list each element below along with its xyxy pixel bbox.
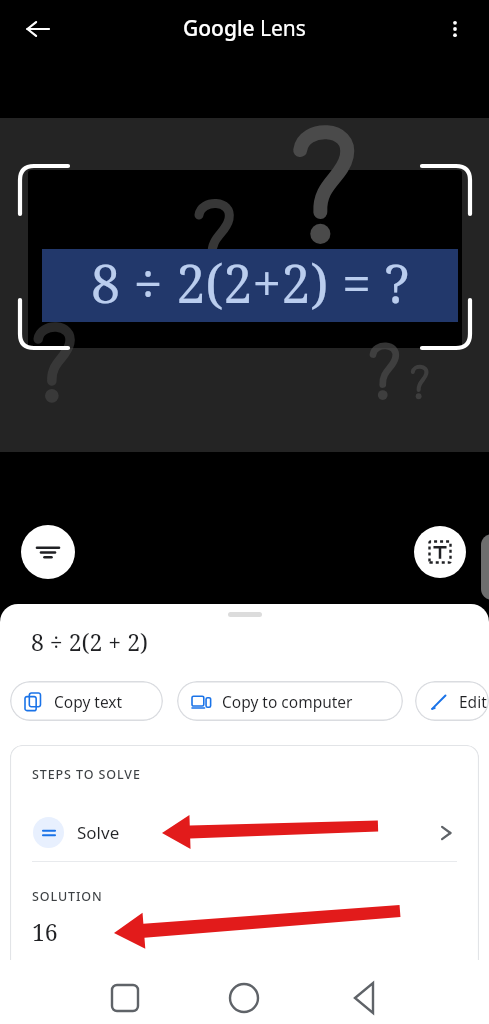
staticText: 8 ÷ 2(2 + 2) [31, 626, 148, 657]
button[interactable]: Back [16, 7, 60, 51]
staticText: 8 ÷ 2(2+2) = ? [91, 247, 410, 318]
staticText: 16 [32, 916, 58, 947]
button[interactable]: Solve [10, 805, 479, 860]
staticText: STEPS TO SOLVE [32, 766, 141, 783]
button[interactable]: Copy text [10, 681, 163, 721]
button[interactable]: Recent apps [95, 962, 155, 1024]
staticText: Solve [77, 821, 120, 844]
staticText: Copy text [54, 691, 123, 712]
button[interactable]: Select text [414, 526, 466, 578]
button[interactable]: Edit [415, 681, 489, 721]
button[interactable]: Back [332, 962, 392, 1024]
staticText: Google [183, 14, 255, 43]
staticText: Copy to computer [222, 691, 353, 712]
staticText: SOLUTION [32, 888, 103, 905]
button[interactable]: More options [433, 7, 477, 51]
button[interactable]: Home [214, 962, 274, 1024]
staticText: Edit [459, 691, 487, 712]
staticText: Lens [260, 14, 306, 43]
button[interactable]: Filter [21, 525, 75, 579]
button[interactable]: Copy to computer [177, 681, 403, 721]
